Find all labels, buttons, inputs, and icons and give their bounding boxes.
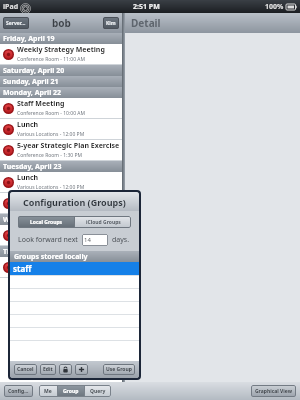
button[interactable]: Staff Meeting [0, 98, 122, 119]
button[interactable]: Bob/Fred 1 on 1 [0, 193, 122, 214]
staticText: Bob/Fred 1 on 1 [17, 194, 72, 204]
staticText: Cancel [17, 366, 34, 373]
staticText: Group [63, 388, 79, 395]
staticText: Various Locations - 12:00 PM [17, 269, 85, 276]
staticText: Look forward next [18, 235, 78, 245]
button[interactable]: iCloud Groups [75, 216, 131, 228]
button[interactable]: Weekly Strategy Meeting [0, 44, 122, 65]
button[interactable]: Lunch [0, 225, 122, 246]
staticText: 100% [265, 2, 284, 12]
staticText: Tuesday, April 23 [3, 162, 62, 172]
staticText: days. [112, 235, 130, 245]
staticText: Edit [43, 366, 53, 373]
button[interactable]: Edit [40, 364, 56, 375]
button[interactable]: Lunch [0, 172, 122, 193]
staticText: Saturday, April 20 [3, 66, 65, 76]
staticText: Staff Meeting [17, 99, 65, 109]
button[interactable]: 14 [82, 234, 108, 246]
button[interactable]: Graphical View [251, 385, 296, 397]
staticText: Friday, April 19 [3, 34, 55, 44]
button[interactable]: 5-year Strategic Plan Exercise [0, 140, 122, 161]
button[interactable]: Query [85, 385, 111, 397]
staticText: Lunch [17, 226, 39, 236]
staticText: 14 [84, 236, 91, 244]
button[interactable]: Kim [103, 17, 119, 29]
staticText: Lunch [17, 258, 39, 268]
button[interactable]: Lunch [0, 257, 122, 278]
staticText: Query [90, 388, 106, 395]
staticText: iCloud Groups [86, 219, 121, 226]
button[interactable]: Use Group [103, 364, 135, 375]
staticText: Monday, April 22 [3, 88, 62, 98]
staticText: Kim [106, 20, 116, 27]
staticText: Configuration (Groups) [23, 196, 126, 208]
button[interactable]: Cancel [14, 364, 37, 375]
staticText: Conference Room - 1:30 PM [17, 152, 83, 159]
button[interactable]: Server... [3, 17, 29, 29]
staticText: bob [52, 16, 71, 30]
button[interactable]: Me [39, 385, 57, 397]
button[interactable]: Config... [4, 385, 33, 397]
staticText: Lunch [17, 173, 39, 183]
staticText: staff [13, 263, 32, 274]
button[interactable]: staff [10, 262, 139, 275]
button[interactable]: Add [75, 364, 88, 375]
staticText: Graphical View [255, 388, 292, 395]
staticText: iPad [3, 2, 19, 12]
staticText: Weekly Strategy Meeting [17, 45, 105, 55]
button[interactable]: Group [58, 385, 84, 397]
staticText: Groups stored locally [14, 252, 88, 262]
staticText: Various Locations - 12:00 PM [17, 131, 85, 138]
staticText: Detail [131, 16, 161, 30]
button[interactable]: Lunch [0, 119, 122, 140]
staticText: Lunch [17, 120, 39, 130]
staticText: Bob's Office - 3:00 PM [17, 205, 68, 212]
staticText: 2:51 PM [133, 2, 160, 12]
button[interactable]: Lock [59, 364, 72, 375]
staticText: Sunday, April 21 [3, 77, 59, 87]
staticText: 5-year Strategic Plan Exercise [17, 141, 120, 151]
staticText: Conference Room - 10:00 AM [17, 110, 86, 117]
staticText: Use Group [106, 366, 132, 373]
staticText: Me [44, 388, 52, 395]
button[interactable]: Local Groups [18, 216, 74, 228]
staticText: Local Groups [30, 219, 63, 226]
staticText: Wednesday, April 24 [3, 215, 74, 225]
staticText: Thursday, April 25 [3, 247, 66, 257]
staticText: Conference Room - 11:00 AM [17, 56, 86, 63]
staticText: Various Locations - 12:00 PM [17, 237, 85, 244]
staticText: Config... [8, 388, 29, 395]
staticText: Server... [6, 20, 26, 27]
staticText: Various Locations - 12:00 PM [17, 184, 85, 191]
